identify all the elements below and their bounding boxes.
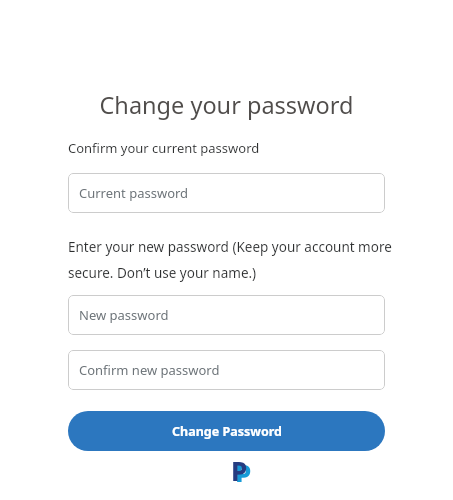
staticText: Confirm your current password <box>68 139 260 157</box>
staticText: Confirm new password <box>79 361 220 379</box>
staticText: P <box>231 453 248 482</box>
button[interactable]: Change Password <box>68 411 385 451</box>
staticText: Current password <box>79 184 189 202</box>
button[interactable]: Confirm new password <box>68 350 385 390</box>
staticText: New password <box>79 306 169 324</box>
staticText: P <box>235 456 252 482</box>
button[interactable]: New password <box>68 295 385 335</box>
staticText: Enter your new password (Keep your accou… <box>68 238 392 282</box>
staticText: Change Password <box>172 423 282 440</box>
staticText: Change your password <box>0 89 453 121</box>
button[interactable]: Current password <box>68 173 385 213</box>
